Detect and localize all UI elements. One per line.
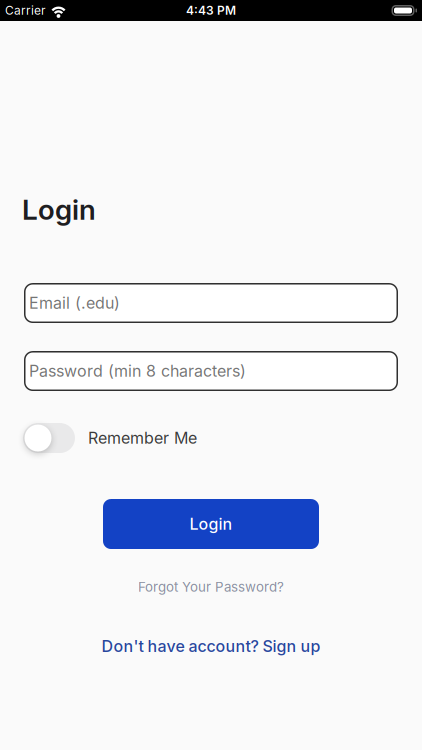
button[interactable]: Email (.edu) bbox=[24, 283, 398, 323]
button[interactable] bbox=[23, 423, 75, 453]
button[interactable]: Don't have account? Sign up bbox=[101, 637, 320, 656]
staticText: Remember Me bbox=[88, 429, 197, 447]
staticText: Email (.edu) bbox=[29, 294, 120, 312]
staticText: Login bbox=[22, 193, 96, 226]
staticText: Carrier bbox=[5, 3, 46, 18]
staticText: Password (min 8 characters) bbox=[29, 362, 246, 380]
staticText: 4:43 PM bbox=[186, 3, 236, 18]
button[interactable]: Forgot Your Password? bbox=[138, 579, 284, 595]
button[interactable]: Password (min 8 characters) bbox=[24, 351, 398, 391]
staticText: Login bbox=[189, 515, 232, 533]
staticText: Forgot Your Password? bbox=[138, 579, 284, 595]
staticText: Don't have account? Sign up bbox=[101, 637, 320, 656]
button[interactable]: Login bbox=[103, 499, 319, 549]
